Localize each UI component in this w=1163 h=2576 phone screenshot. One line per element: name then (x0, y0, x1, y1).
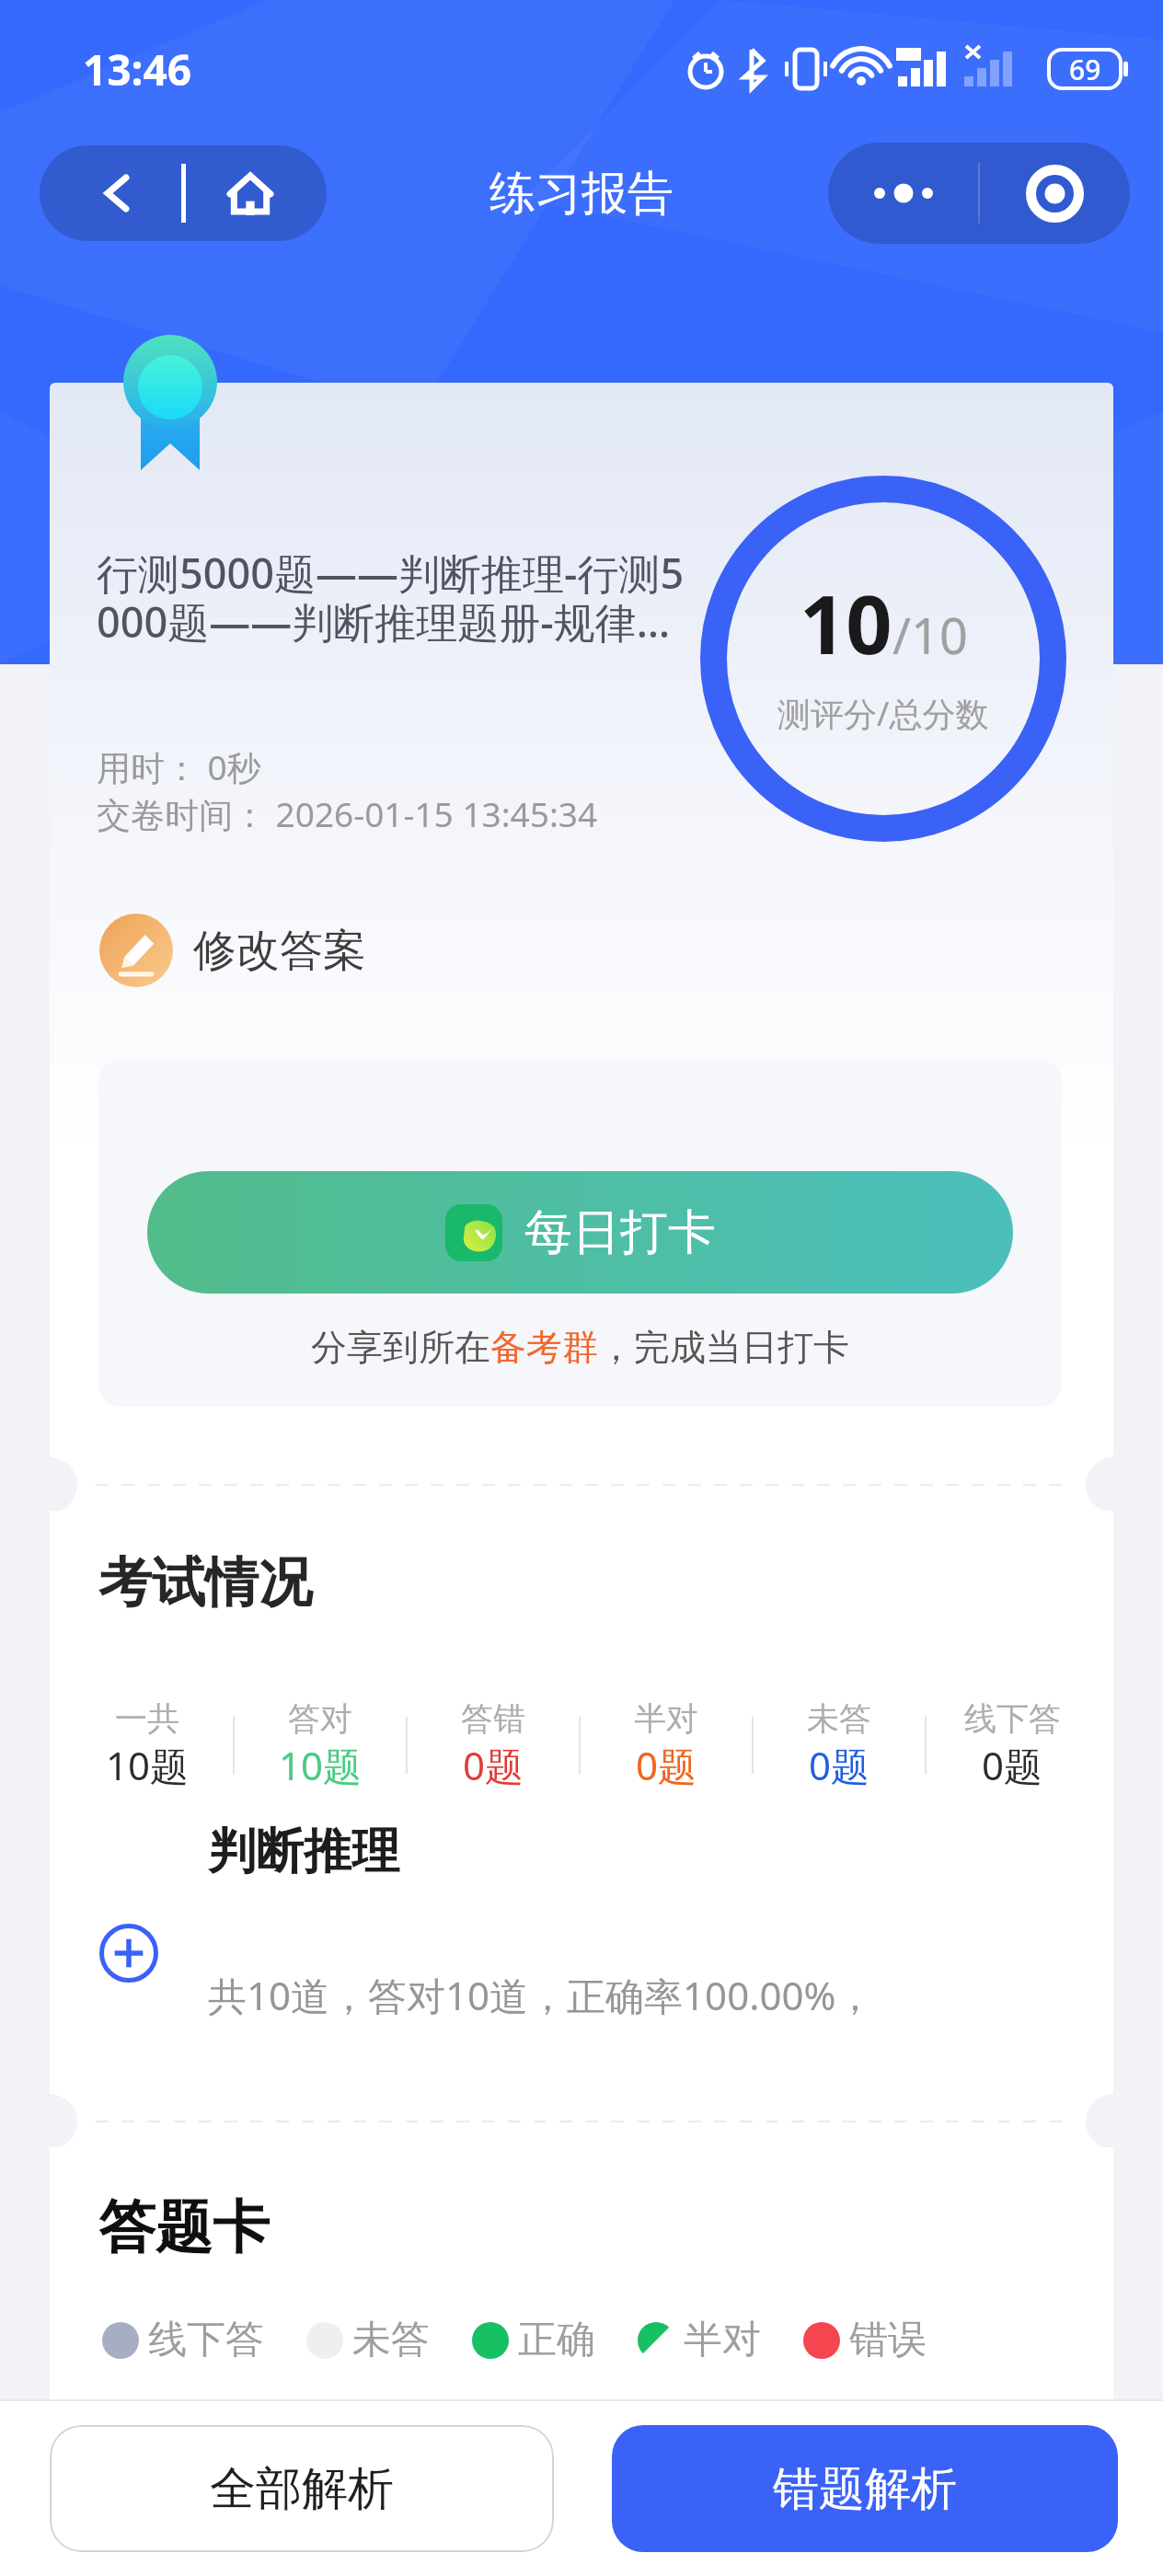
staticText: 全部解析 (210, 2460, 394, 2518)
staticText: 未答 (807, 1698, 871, 1739)
staticText: 测评分/总分数 (777, 691, 989, 736)
staticText: 0题 (636, 1739, 697, 1791)
staticText: 交卷时间： 2026-01-15 13:45:34 (97, 790, 598, 837)
staticText: 修改答案 (193, 924, 366, 978)
staticText: 13:46 (83, 40, 192, 98)
staticText: 每日打卡 (524, 1202, 716, 1263)
staticText: 答对 (288, 1698, 352, 1739)
staticText: 练习报告 (489, 165, 674, 223)
staticText: 答题卡 (98, 2191, 270, 2263)
staticText: 考试情况 (98, 1549, 312, 1616)
staticText: 用时： 0秒 (97, 743, 261, 790)
staticText: 正确 (518, 2316, 595, 2364)
button[interactable]: 判断推理 (50, 1791, 1113, 2096)
staticText: 一共 (115, 1698, 179, 1739)
staticText: 半对 (634, 1698, 698, 1739)
staticText: 错误 (849, 2316, 927, 2364)
staticText: 10 (800, 568, 892, 678)
staticText: 69 (1069, 51, 1101, 88)
staticText: 线下答 (964, 1698, 1061, 1739)
button[interactable]: 错题解析 (612, 2425, 1118, 2552)
staticText: 0题 (809, 1739, 870, 1791)
button[interactable]: More options (829, 143, 978, 244)
staticText: 未答 (352, 2316, 430, 2364)
staticText: 错题解析 (773, 2460, 957, 2518)
button[interactable]: 修改答案 (99, 914, 366, 987)
staticText: 10题 (279, 1739, 363, 1791)
button[interactable]: Close (980, 143, 1129, 244)
button[interactable]: 全部解析 (50, 2425, 554, 2552)
staticText: 判断推理 (208, 1822, 399, 1882)
staticText: /10 (892, 601, 968, 669)
staticText: 0题 (463, 1739, 524, 1791)
staticText: 0题 (982, 1739, 1043, 1791)
staticText: 线下答 (148, 2316, 264, 2364)
button[interactable]: 每日打卡 (147, 1171, 1013, 1294)
staticText: 10题 (106, 1739, 190, 1791)
staticText: 答错 (461, 1698, 525, 1739)
button[interactable]: Back (52, 145, 181, 241)
button[interactable]: Home (186, 145, 315, 241)
staticText: 共10道，答对10道，正确率100.00%， (208, 1969, 875, 2021)
staticText: 半对 (684, 2316, 761, 2364)
staticText: 行测5000题——判断推理-行测5 000题——判断推理题册-规律… (97, 545, 685, 650)
staticText: 分享到所在备考群，完成当日打卡 (311, 1325, 849, 1370)
